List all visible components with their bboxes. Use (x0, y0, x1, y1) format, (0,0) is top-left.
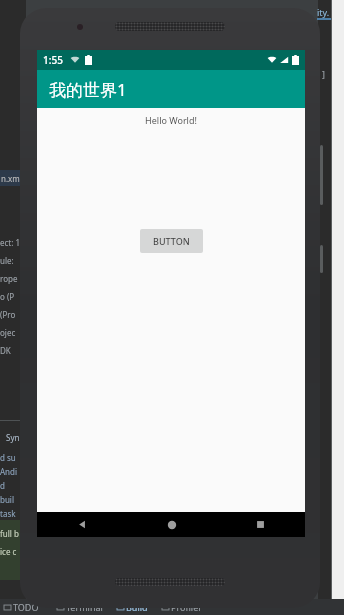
staticText: Syn (6, 432, 20, 443)
staticText: BUTTON (153, 235, 190, 247)
button[interactable]: TODO (4, 601, 39, 613)
staticText: Terminal (66, 601, 103, 613)
button[interactable]: Terminal (57, 601, 103, 613)
staticText: Andi (0, 466, 18, 477)
staticText: ule: (0, 255, 14, 266)
staticText: rope (0, 273, 18, 284)
staticText: full b (0, 528, 19, 539)
button[interactable]: Build (117, 601, 148, 613)
staticText: task (0, 508, 16, 519)
staticText: ect: 1 (0, 237, 21, 248)
staticText: n.xml (1, 173, 22, 184)
staticText: ity. (317, 6, 330, 18)
staticText: DK (0, 345, 13, 356)
button[interactable]: Home (127, 512, 216, 537)
staticText: ice c (0, 546, 17, 557)
button[interactable]: BUTTON (140, 229, 203, 253)
button[interactable]: Recent apps (216, 512, 305, 537)
staticText: buil (0, 494, 14, 505)
staticText: ojec (0, 327, 16, 338)
staticText: TODO (13, 601, 39, 613)
staticText: d su (0, 452, 16, 463)
staticText: Hello World! (145, 114, 197, 126)
button[interactable]: Back (37, 512, 127, 537)
staticText: Build (126, 601, 148, 613)
button[interactable]: Profiler (162, 601, 202, 613)
staticText: (Pro (0, 309, 16, 320)
staticText: Profiler (171, 601, 202, 613)
staticText: ] (322, 68, 325, 80)
staticText: d (0, 480, 5, 491)
staticText: o (P (0, 291, 15, 302)
staticText: 1:55 (43, 53, 63, 67)
button[interactable]: 我的世界1 (37, 70, 305, 108)
staticText: 我的世界1 (49, 78, 127, 101)
